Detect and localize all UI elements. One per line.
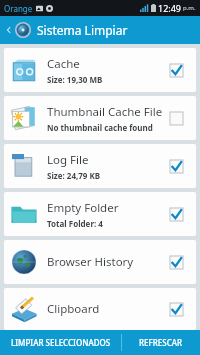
- staticText: Thumbnail Cache File: [47, 104, 163, 120]
- staticText: Log File: [47, 152, 89, 168]
- staticText: Size: 19,30 MB: [47, 74, 103, 85]
- button[interactable]: Thumbnail Cache File: [4, 96, 196, 140]
- staticText: Browser History: [47, 254, 134, 270]
- button[interactable]: Checked: [167, 253, 185, 271]
- button[interactable]: Checked: [167, 300, 185, 318]
- button[interactable]: Checked: [167, 61, 185, 79]
- button[interactable]: LIMPIAR SELECCIONADOS: [0, 330, 121, 355]
- button[interactable]: Unchecked: [167, 109, 185, 127]
- button[interactable]: Empty Folder: [4, 192, 196, 236]
- button[interactable]: Back: [3, 16, 15, 44]
- button[interactable]: Cache: [4, 48, 196, 92]
- staticText: No thumbnail cache found: [47, 122, 153, 133]
- staticText: Empty Folder: [47, 200, 119, 216]
- staticText: LIMPIAR SELECCIONADOS: [11, 337, 111, 348]
- button[interactable]: Clipboard: [4, 288, 196, 330]
- button[interactable]: REFRESCAR: [122, 330, 200, 355]
- staticText: REFRESCAR: [139, 337, 183, 348]
- button[interactable]: Checked: [167, 157, 185, 175]
- staticText: Cache: [47, 56, 80, 72]
- staticText: Size: 24,79 KB: [47, 170, 101, 181]
- staticText: Total Folder: 4: [47, 218, 103, 229]
- staticText: 12:49: [158, 2, 182, 14]
- staticText: Sistema Limpiar: [37, 22, 128, 38]
- button[interactable]: Checked: [167, 205, 185, 223]
- button[interactable]: Log File: [4, 144, 196, 188]
- staticText: Orange: [4, 3, 33, 14]
- button[interactable]: Browser History: [4, 240, 196, 284]
- staticText: Clipboard: [47, 301, 100, 317]
- staticText: p.m.: [183, 4, 196, 12]
